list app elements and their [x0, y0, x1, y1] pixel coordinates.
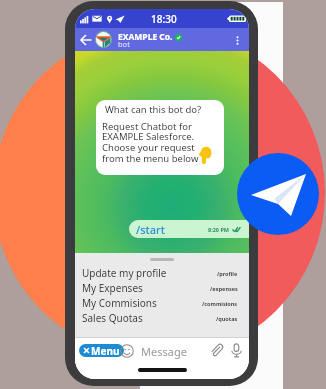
button[interactable]: Back [77, 31, 95, 49]
button[interactable]: Menu [79, 344, 124, 357]
button[interactable]: Telegram [237, 153, 319, 235]
staticText: Update my profile [82, 266, 167, 280]
button[interactable]: My Commisions [75, 295, 249, 310]
button[interactable]: Emoji [120, 344, 134, 358]
staticText: /commisions [202, 300, 238, 307]
button[interactable]: Attach file [209, 343, 224, 358]
button[interactable]: Sales Quotas [75, 310, 249, 325]
staticText: EXAMPLE Co. [118, 31, 173, 43]
button[interactable]: More options [228, 31, 246, 49]
staticText: Request Chatbot for EXAMPLE Salesforce. … [102, 120, 199, 165]
staticText: /profile [217, 270, 238, 277]
staticText: Menu [91, 344, 120, 357]
staticText: My Commisions [82, 296, 157, 310]
staticText: 18:30 [151, 12, 177, 26]
staticText: What can this bot do? [105, 103, 202, 116]
staticText: bot [118, 39, 130, 49]
staticText: /expenses [210, 285, 238, 292]
staticText: My Expenses [82, 281, 143, 295]
staticText: /quotas [216, 315, 238, 322]
button[interactable]: My Expenses [75, 280, 249, 295]
staticText: Message [141, 344, 187, 359]
button[interactable]: Update my profile [75, 265, 249, 280]
staticText: /start [136, 222, 165, 237]
staticText: 8:20 PM [208, 226, 230, 233]
button[interactable]: Record voice message [229, 343, 244, 358]
staticText: Sales Quotas [82, 311, 143, 325]
